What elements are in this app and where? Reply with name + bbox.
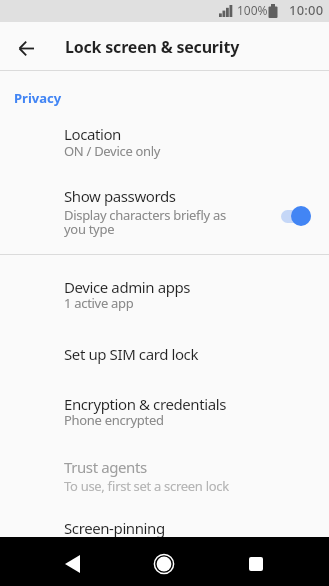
button[interactable] xyxy=(109,537,219,586)
button[interactable] xyxy=(0,383,329,440)
staticText: Lock screen & security xyxy=(65,36,240,58)
staticText: Display characters briefly as xyxy=(64,206,226,224)
button[interactable] xyxy=(0,169,329,247)
staticText: 100% xyxy=(237,2,268,18)
staticText: Screen-pinning xyxy=(64,518,165,538)
button[interactable] xyxy=(219,537,329,586)
staticText: 10:00 xyxy=(289,1,324,19)
staticText: Encryption & credentials xyxy=(64,394,226,414)
staticText: Device admin apps xyxy=(64,277,191,297)
staticText: Location xyxy=(64,124,121,144)
button[interactable] xyxy=(2,22,50,70)
staticText: ON / Device only xyxy=(64,142,161,160)
staticText: 1 active app xyxy=(64,294,134,312)
staticText: Set up SIM card lock xyxy=(64,344,199,364)
button[interactable] xyxy=(277,200,315,232)
staticText: Show passwords xyxy=(64,186,176,206)
staticText: you type xyxy=(64,220,115,238)
staticText: Trust agents xyxy=(64,457,147,477)
button[interactable] xyxy=(0,440,329,505)
staticText: Privacy xyxy=(14,89,62,107)
button[interactable] xyxy=(0,113,329,169)
button[interactable] xyxy=(0,505,329,537)
staticText: Phone encrypted xyxy=(64,411,164,429)
button[interactable] xyxy=(0,537,109,586)
button[interactable] xyxy=(0,325,329,383)
button[interactable] xyxy=(0,262,329,325)
staticText: To use, first set a screen lock xyxy=(64,477,229,495)
